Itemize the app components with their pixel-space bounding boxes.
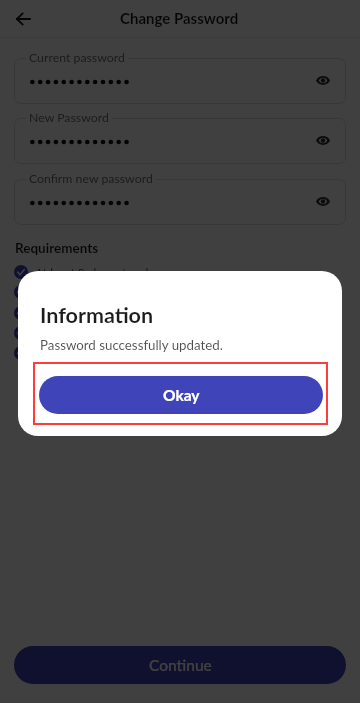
button[interactable]: Continue [14,646,346,684]
staticText: Confirm new password [29,171,153,186]
button[interactable]: Show password [309,187,337,215]
staticText: One special character [35,346,149,360]
staticText: Okay [163,386,200,405]
staticText: At least 8 characters long [35,265,169,279]
staticText: Information [40,302,154,328]
staticText: New Password [29,110,109,125]
staticText: Current password [29,50,125,65]
button[interactable]: Okay [39,376,323,414]
button[interactable]: Show password [309,66,337,94]
staticText: Continue [149,656,212,675]
staticText: Change Password [120,9,239,27]
button[interactable]: Back [0,0,46,37]
button[interactable]: Show password [309,126,337,154]
staticText: Requirements [15,240,99,256]
staticText: One lowercase letter [35,306,145,320]
staticText: Password successfully updated. [40,337,223,353]
